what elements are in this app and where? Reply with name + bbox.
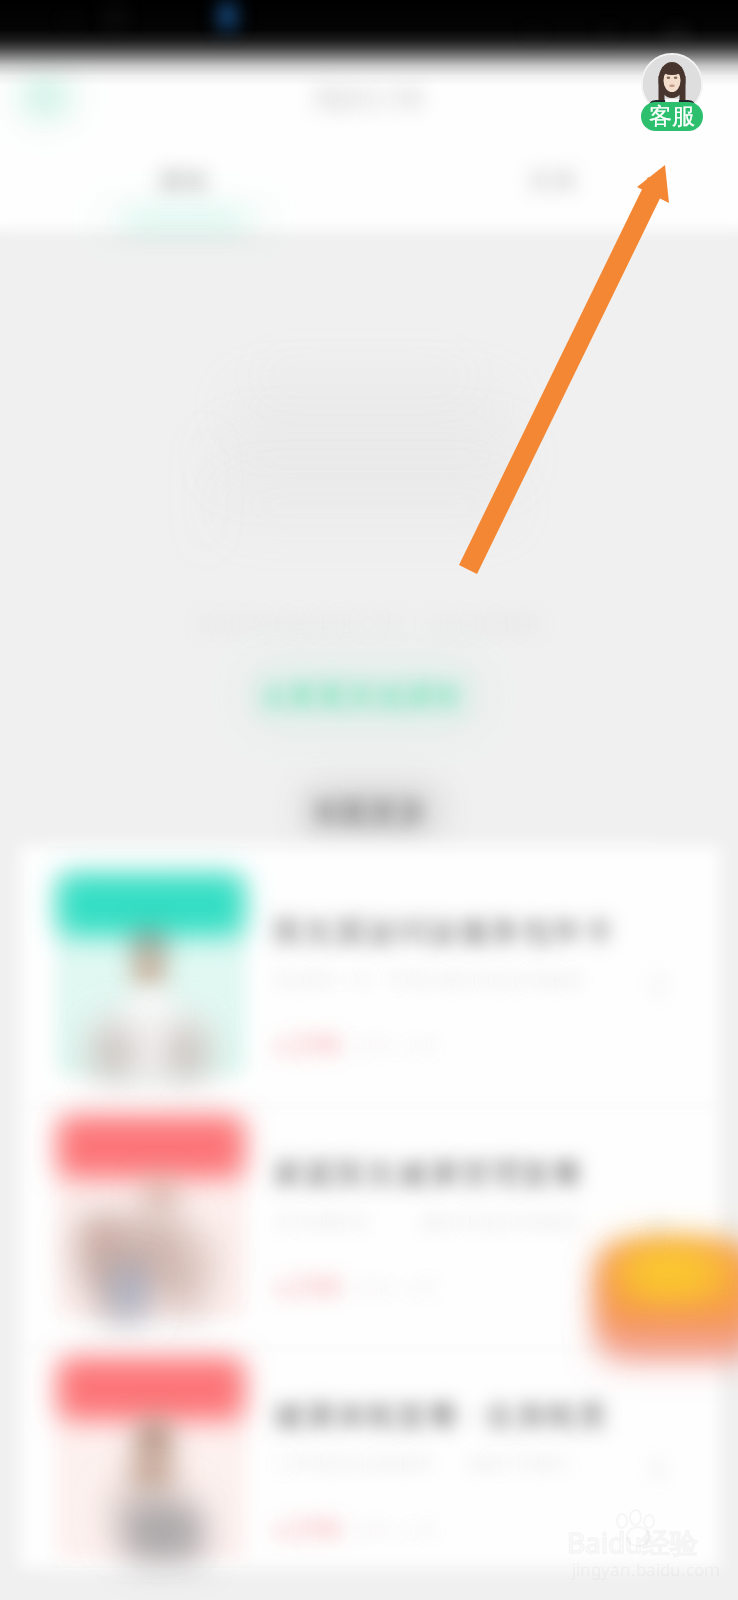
button[interactable]: 客服 Customer service <box>636 48 710 138</box>
